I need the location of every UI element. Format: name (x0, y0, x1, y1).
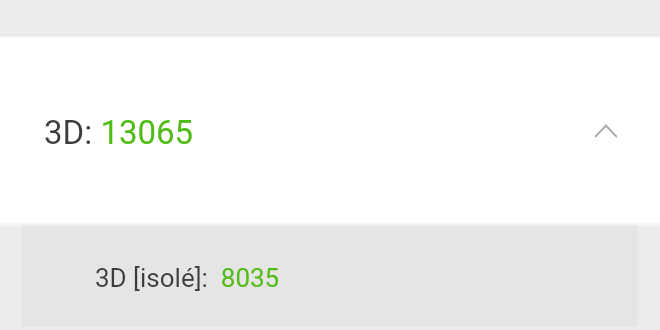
button[interactable]: 3D: 13065 (0, 38, 660, 223)
button[interactable]: Collapse (582, 107, 630, 155)
staticText: 3D: 13065 (44, 113, 194, 152)
staticText: 3D [isolé]: 8035 (95, 263, 280, 293)
button[interactable]: 3D [isolé]: 8035 (22, 223, 638, 327)
